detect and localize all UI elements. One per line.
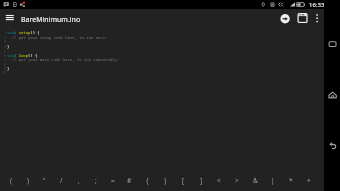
button[interactable]: Back xyxy=(324,137,340,153)
button[interactable]: + xyxy=(300,170,318,191)
button[interactable]: [ xyxy=(174,170,192,191)
button[interactable]: Upload sketch xyxy=(277,9,293,32)
staticText: } xyxy=(7,44,10,49)
button[interactable]: Serial monitor xyxy=(294,9,310,32)
staticText: ) xyxy=(27,176,29,185)
button[interactable]: ; xyxy=(87,170,104,191)
staticText: ( xyxy=(10,176,12,185)
staticText: { xyxy=(146,176,149,185)
staticText: ; xyxy=(95,176,97,185)
staticText: // put your setup code here, to run once… xyxy=(7,35,108,40)
staticText: < xyxy=(217,176,221,185)
staticText: 10 xyxy=(0,70,6,75)
staticText: / xyxy=(60,176,63,185)
button[interactable]: > xyxy=(228,170,246,191)
button[interactable]: / xyxy=(53,170,70,191)
button[interactable]: < xyxy=(210,170,228,191)
staticText: 4 xyxy=(0,44,6,49)
staticText: > xyxy=(235,176,239,185)
button[interactable]: # xyxy=(121,170,138,191)
staticText: BareMinimum.ino xyxy=(21,15,81,25)
button[interactable]: & xyxy=(246,170,264,191)
staticText: , xyxy=(78,176,80,185)
staticText: } xyxy=(7,66,10,71)
button[interactable]: * xyxy=(282,170,300,191)
staticText: 3 xyxy=(0,39,6,44)
staticText: " xyxy=(43,176,46,185)
staticText: 6 xyxy=(0,53,6,58)
button[interactable]: " xyxy=(36,170,53,191)
button[interactable]: ( xyxy=(2,170,19,191)
staticText: 8 xyxy=(0,62,6,67)
button[interactable]: , xyxy=(70,170,87,191)
staticText: [ xyxy=(182,176,185,185)
staticText: + xyxy=(307,176,311,185)
button[interactable]: ] xyxy=(192,170,210,191)
staticText: } xyxy=(164,176,167,185)
staticText: & xyxy=(253,176,258,185)
staticText: 2 xyxy=(0,35,6,40)
staticText: 7 xyxy=(0,57,6,62)
staticText: * xyxy=(289,176,293,185)
button[interactable]: More options xyxy=(311,9,324,32)
staticText: | xyxy=(271,176,275,185)
button[interactable]: | xyxy=(264,170,282,191)
staticText: 1 xyxy=(0,30,6,35)
button[interactable]: { xyxy=(138,170,156,191)
button[interactable]: ) xyxy=(19,170,36,191)
staticText: 16:33 xyxy=(309,1,325,9)
staticText: void loop() { xyxy=(7,53,38,58)
staticText: 5 xyxy=(0,48,6,53)
staticText: ] xyxy=(200,176,203,185)
button[interactable]: Home xyxy=(324,87,340,103)
button[interactable]: } xyxy=(156,170,174,191)
button[interactable]: = xyxy=(104,170,121,191)
staticText: void setup() { xyxy=(7,30,40,35)
staticText: # xyxy=(127,176,132,185)
button[interactable]: Recent apps xyxy=(324,36,340,52)
staticText: = xyxy=(111,176,115,185)
staticText: 9 xyxy=(0,66,6,71)
button[interactable]: Open navigation drawer xyxy=(0,9,20,32)
staticText: // put your main code here, to run repea… xyxy=(7,57,120,62)
